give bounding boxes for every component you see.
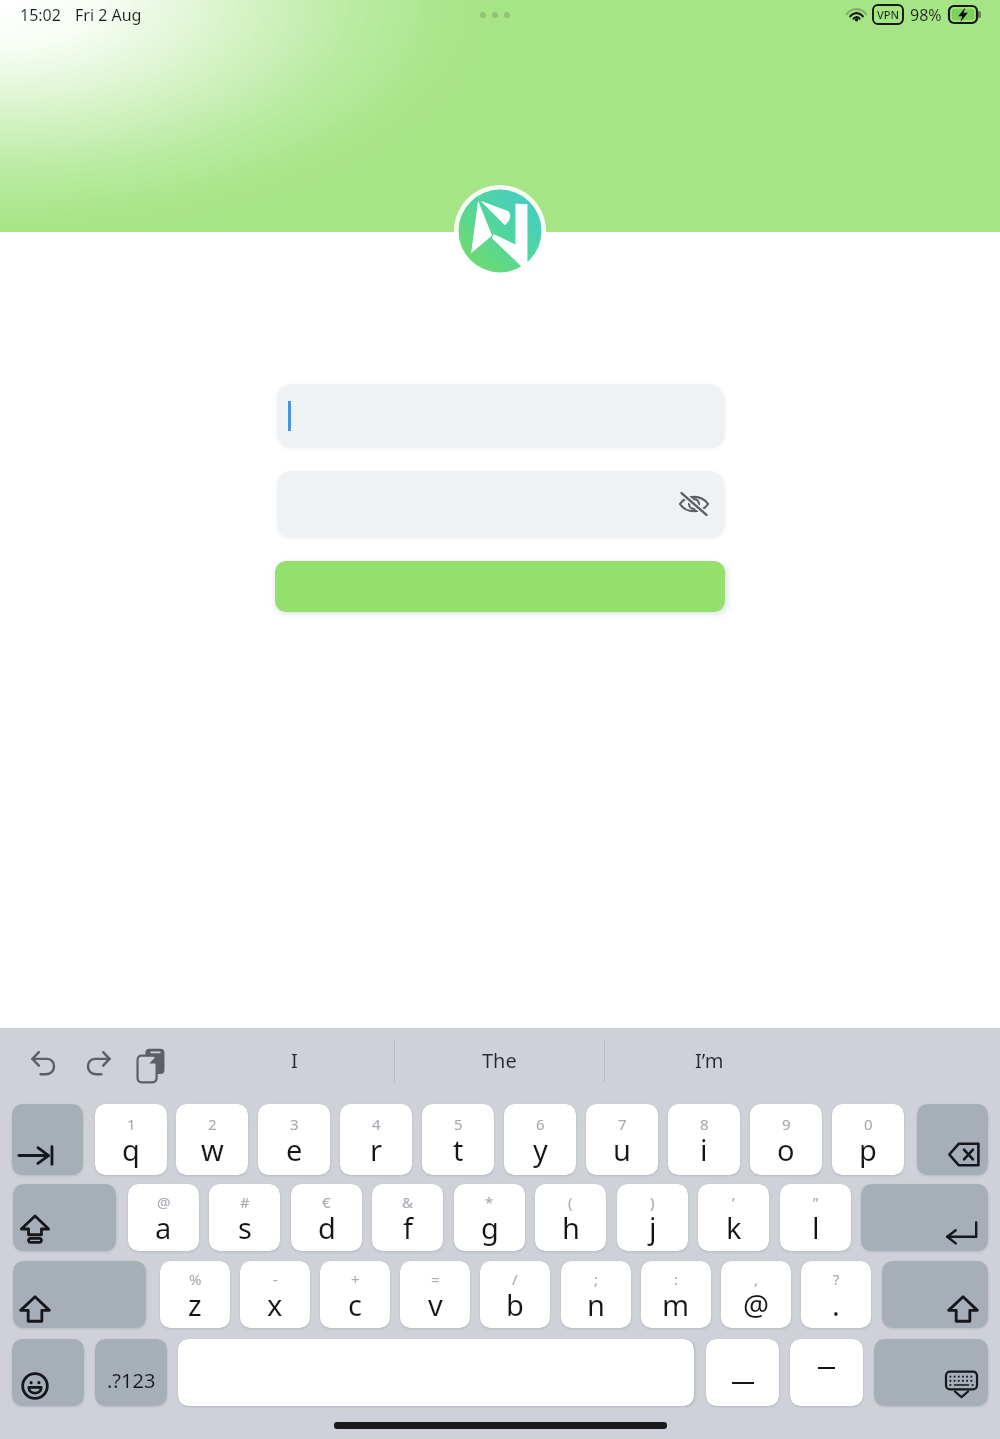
staticText: g — [481, 1208, 499, 1247]
button[interactable]: : — [641, 1261, 711, 1328]
button[interactable]: - — [240, 1261, 310, 1328]
button[interactable]: Hide keyboard — [874, 1339, 988, 1406]
staticText: f — [403, 1208, 413, 1247]
button[interactable]: Shift — [13, 1261, 146, 1328]
staticText: I’m — [695, 1047, 724, 1074]
staticText: The — [482, 1047, 517, 1074]
button[interactable]: Backspace — [917, 1104, 988, 1175]
button[interactable]: I — [195, 1034, 393, 1086]
staticText: v — [428, 1285, 443, 1324]
staticText: 8 — [700, 1114, 709, 1134]
staticText: % — [189, 1269, 202, 1289]
staticText: : — [674, 1269, 679, 1289]
button[interactable]: ? — [801, 1261, 871, 1328]
button[interactable]: 7 — [586, 1104, 658, 1175]
button[interactable]: Tab — [12, 1104, 83, 1175]
staticText: Fri 2 Aug — [75, 4, 142, 26]
button[interactable]: 6 — [504, 1104, 576, 1175]
staticText: a — [155, 1208, 172, 1247]
button[interactable]: ’ — [698, 1184, 769, 1251]
staticText: / — [512, 1269, 518, 1289]
staticText: t — [453, 1130, 464, 1169]
button[interactable]: 5 — [422, 1104, 494, 1175]
button[interactable]: Numbers — [95, 1339, 167, 1406]
staticText: n — [587, 1285, 605, 1324]
staticText: 6 — [536, 1114, 545, 1134]
button[interactable]: 2 — [176, 1104, 248, 1175]
button[interactable]: Undo — [21, 1041, 65, 1085]
button[interactable]: Enter — [861, 1184, 988, 1251]
button[interactable]: 9 — [750, 1104, 822, 1175]
button[interactable]: Log in — [275, 561, 725, 612]
staticText: 98% — [910, 4, 942, 26]
button[interactable]: 1 — [95, 1104, 167, 1175]
staticText: I — [291, 1047, 298, 1074]
button[interactable]: ; — [561, 1261, 631, 1328]
button[interactable]: Caps lock — [13, 1184, 116, 1251]
staticText: ) — [650, 1192, 655, 1212]
button[interactable]: 3 — [258, 1104, 330, 1175]
staticText: + — [351, 1269, 360, 1289]
button[interactable] — [178, 1339, 694, 1406]
staticText: ? — [833, 1269, 840, 1289]
button[interactable]: @ — [128, 1184, 199, 1251]
button[interactable]: € — [291, 1184, 362, 1251]
button[interactable]: ( — [535, 1184, 606, 1251]
staticText: 3 — [290, 1114, 299, 1134]
staticText: & — [402, 1192, 413, 1212]
button[interactable]: = — [400, 1261, 470, 1328]
button[interactable]: Clipboard — [129, 1043, 173, 1087]
staticText: 7 — [618, 1114, 627, 1134]
button[interactable]: Hyphen — [790, 1339, 863, 1406]
button[interactable]: Show password — [672, 482, 716, 526]
staticText: @ — [743, 1285, 770, 1324]
button[interactable]: & — [372, 1184, 443, 1251]
button[interactable]: 0 — [832, 1104, 904, 1175]
staticText: j — [649, 1208, 657, 1247]
staticText: h — [562, 1208, 580, 1247]
staticText: 4 — [372, 1114, 381, 1134]
staticText: 2 — [208, 1114, 217, 1134]
staticText: y — [533, 1130, 548, 1169]
button[interactable]: 4 — [340, 1104, 412, 1175]
staticText: x — [267, 1285, 283, 1324]
staticText: r — [370, 1130, 382, 1169]
staticText: i — [700, 1130, 708, 1169]
staticText: p — [859, 1130, 877, 1169]
button[interactable]: 8 — [668, 1104, 740, 1175]
button[interactable]: Shift right — [882, 1261, 988, 1328]
button[interactable]: # — [209, 1184, 280, 1251]
staticText: .?123 — [107, 1367, 156, 1394]
button[interactable]: I’m — [606, 1034, 813, 1086]
staticText: b — [506, 1285, 524, 1324]
button[interactable]: Password — [277, 471, 723, 537]
staticText: s — [238, 1208, 252, 1247]
button[interactable]: Emoji — [12, 1339, 84, 1406]
button[interactable]: The — [396, 1034, 603, 1086]
staticText: d — [318, 1208, 336, 1247]
staticText: m — [662, 1285, 690, 1324]
button[interactable]: Underscore — [706, 1339, 779, 1406]
staticText: 0 — [864, 1114, 873, 1134]
staticText: = — [431, 1269, 440, 1289]
button[interactable]: Redo — [76, 1041, 120, 1085]
button[interactable]: ) — [617, 1184, 688, 1251]
button[interactable]: + — [320, 1261, 390, 1328]
button[interactable]: ” — [780, 1184, 851, 1251]
staticText: 1 — [127, 1114, 136, 1134]
staticText: ( — [568, 1192, 573, 1212]
button[interactable]: Username — [277, 384, 723, 447]
staticText: * — [485, 1192, 494, 1212]
staticText: @ — [157, 1192, 171, 1212]
button[interactable]: % — [160, 1261, 230, 1328]
staticText: o — [777, 1130, 795, 1169]
button[interactable]: , — [721, 1261, 791, 1328]
button[interactable]: / — [480, 1261, 550, 1328]
staticText: VPN — [877, 7, 900, 22]
staticText: 5 — [454, 1114, 463, 1134]
staticText: 9 — [782, 1114, 791, 1134]
staticText: ” — [813, 1192, 819, 1212]
staticText: u — [613, 1130, 631, 1169]
staticText: - — [273, 1269, 278, 1289]
button[interactable]: * — [454, 1184, 525, 1251]
